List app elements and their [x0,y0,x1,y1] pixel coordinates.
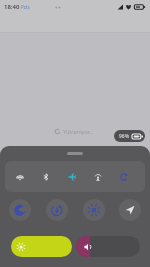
button[interactable]: Wi-Fi [6,161,33,192]
button[interactable]: Bluetooth [33,161,59,192]
button[interactable]: Battery 96 percent [114,130,145,142]
button[interactable]: Airplane mode [59,161,85,192]
staticText: 96% [119,133,130,140]
button[interactable]: Brightness [11,236,72,257]
button[interactable]: Timer [46,199,68,221]
staticText: Pzts [21,4,30,10]
staticText: Yükleniyor… [63,128,94,135]
button[interactable]: Hotspot [85,161,111,192]
button[interactable]: Dark mode [9,199,31,221]
button[interactable]: Volume [76,236,140,257]
button[interactable]: Data saver [111,161,137,192]
staticText: 18:40 [4,3,20,11]
button[interactable]: Location [119,199,141,221]
button[interactable]: Auto brightness [83,199,105,221]
